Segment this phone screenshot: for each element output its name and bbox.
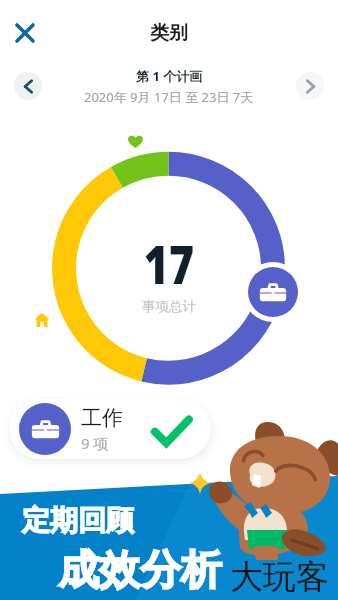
staticText: 9 项 — [81, 433, 109, 453]
staticText: 大玩客 — [230, 556, 329, 598]
button[interactable]: 工作 — [9, 398, 211, 459]
button[interactable]: Work category — [243, 262, 303, 322]
button[interactable]: Previous — [14, 72, 42, 100]
staticText: 工作 — [81, 405, 123, 431]
button[interactable]: Next — [296, 72, 324, 100]
staticText: 2020年 9月 17日 至 23日 7天 — [84, 88, 254, 106]
staticText: 定期回顾 — [22, 503, 134, 538]
staticText: 事项总计 — [142, 298, 196, 315]
staticText: 第 1 个计画 — [136, 67, 203, 85]
button[interactable]: Close — [9, 17, 41, 49]
staticText: 类别 — [150, 21, 188, 45]
staticText: 17 — [144, 227, 194, 298]
staticText: 成效分析 — [58, 545, 222, 597]
